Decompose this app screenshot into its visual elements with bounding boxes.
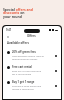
staticText: 20% off green fees <box>12 50 36 54</box>
staticText: Book any 18-hole round and get a cart in… <box>12 70 42 76</box>
button[interactable]: 20% off green fees <box>3 48 61 63</box>
staticText: Special offers and discounts on your rou… <box>3 7 33 19</box>
staticText: Available offers <box>7 41 29 45</box>
staticText: 9:41 <box>6 28 12 32</box>
staticText: Buy 1 get 1 range <box>12 80 35 84</box>
button[interactable]: Back <box>6 35 9 38</box>
staticText: Purchase a large bucket and receive a se… <box>12 85 42 91</box>
staticText: Offers <box>27 34 36 38</box>
staticText: Valid weekdays before 10am at selected p… <box>12 55 44 61</box>
button[interactable]: Free cart rental <box>3 63 61 78</box>
button[interactable]: Buy 1 get 1 range <box>3 78 61 93</box>
staticText: Free cart rental <box>12 65 32 69</box>
